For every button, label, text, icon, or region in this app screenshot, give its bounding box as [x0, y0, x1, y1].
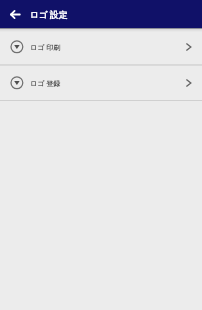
button[interactable]: ロゴ 登録	[0, 64, 202, 100]
staticText: ロゴ 設定	[30, 9, 68, 21]
staticText: ロゴ 登録	[30, 79, 61, 89]
button[interactable]: ロゴ 印刷	[0, 28, 202, 64]
staticText: ロゴ 印刷	[30, 43, 61, 53]
button[interactable]: Back	[9, 8, 21, 20]
